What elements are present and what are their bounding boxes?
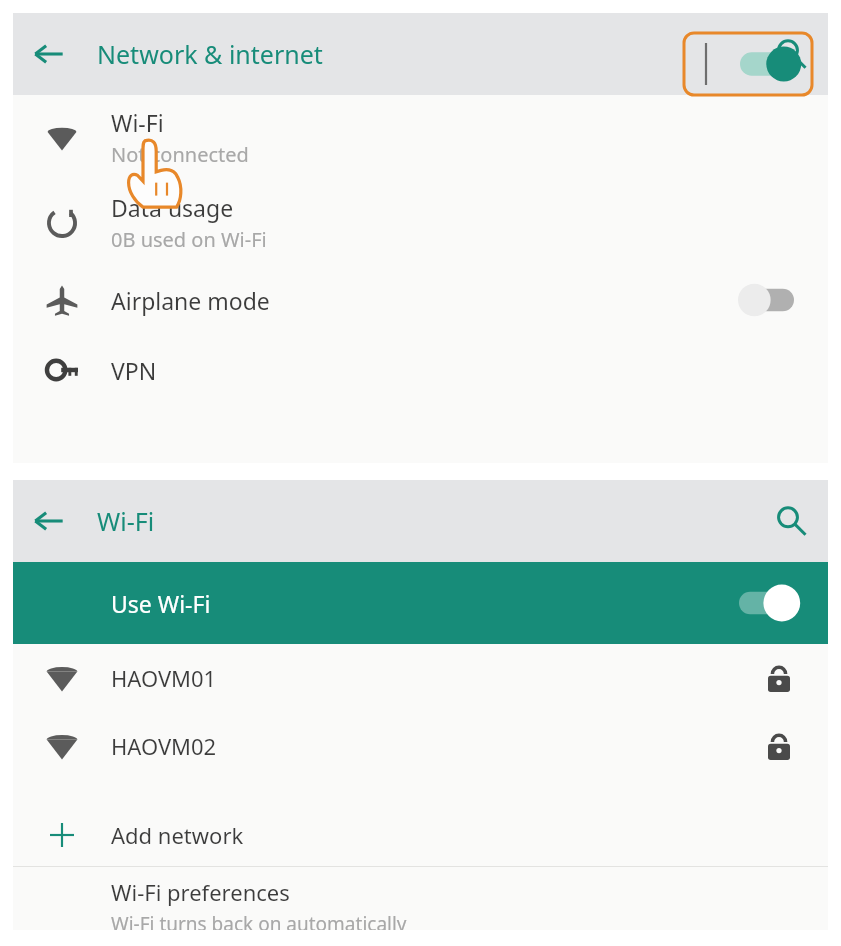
staticText: HAOVM02 (111, 731, 217, 761)
staticText: Use Wi-Fi (111, 588, 211, 619)
staticText: Wi-Fi turns back on automatically (111, 911, 407, 930)
button[interactable]: Data usage (13, 180, 828, 265)
button[interactable]: Wi-Fi (13, 95, 828, 180)
button[interactable]: Back (13, 480, 85, 562)
button[interactable]: Add network (13, 804, 828, 866)
staticText: Add network (111, 820, 244, 850)
staticText: Network & internet (97, 37, 323, 71)
button[interactable]: HAOVM01 (13, 644, 828, 712)
button[interactable]: Use Wi-Fi (13, 562, 828, 644)
staticText: Not connected (111, 141, 249, 168)
staticText: Data usage (111, 192, 234, 223)
button[interactable]: Search (754, 480, 828, 562)
staticText: Airplane mode (111, 285, 270, 316)
staticText: Wi-Fi (97, 504, 155, 538)
button[interactable]: Wi-Fi preferences (13, 867, 828, 930)
staticText: VPN (111, 355, 157, 386)
staticText: Wi-Fi (111, 107, 164, 138)
staticText: 0B used on Wi-Fi (111, 226, 267, 253)
button[interactable]: VPN (13, 335, 828, 405)
staticText: Wi-Fi preferences (111, 877, 290, 907)
button[interactable]: Wi-Fi toggle (740, 45, 802, 83)
button[interactable]: HAOVM02 (13, 712, 828, 780)
button[interactable]: Search (754, 13, 828, 95)
button[interactable]: Back (13, 13, 85, 95)
button[interactable]: Airplane mode (13, 265, 828, 335)
staticText: HAOVM01 (111, 663, 217, 693)
